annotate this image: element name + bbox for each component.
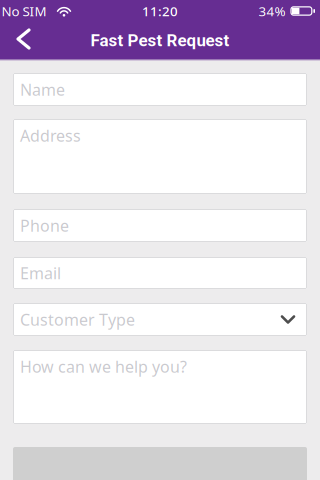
staticText: Fast Pest Request: [90, 31, 229, 50]
staticText: Name: [13, 74, 77, 104]
staticText: How can we help you?: [20, 356, 187, 377]
textField[interactable]: Name: [13, 74, 307, 104]
staticText: Address: [13, 141, 99, 171]
staticText: Phone: [20, 215, 69, 236]
staticText: Name: [20, 79, 65, 100]
staticText: 34%: [258, 2, 285, 20]
textField[interactable]: Phone: [13, 210, 307, 240]
staticText: Email: [13, 258, 72, 288]
staticText: How can we help you?: [13, 372, 251, 402]
textField[interactable]: Address: [13, 141, 307, 171]
textField[interactable]: How can we help you?: [13, 372, 307, 402]
staticText: Customer Type: [20, 309, 135, 330]
staticText: Address: [20, 125, 81, 146]
staticText: No SIM: [1, 2, 46, 20]
button[interactable]: Customer Type: [13, 303, 307, 336]
textField[interactable]: Email: [13, 258, 307, 288]
button[interactable]: Back: [0, 22, 43, 59]
staticText: Phone: [13, 210, 82, 240]
staticText: Email: [20, 262, 61, 284]
staticText: 11:20: [142, 2, 178, 20]
